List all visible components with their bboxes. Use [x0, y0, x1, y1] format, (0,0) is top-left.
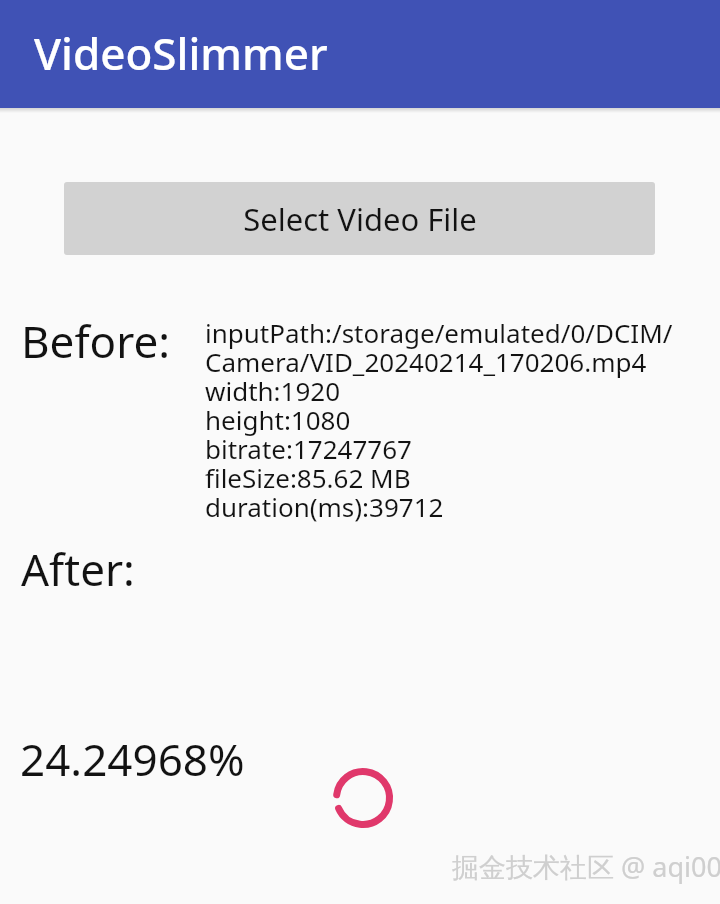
- staticText: VideoSlimmer: [34, 23, 328, 83]
- other: Compressing progress: [333, 768, 393, 828]
- staticText: 24.24968%: [20, 729, 245, 789]
- staticText: After:: [21, 539, 135, 599]
- staticText: Select Video File: [243, 198, 477, 240]
- staticText: Before:: [21, 311, 205, 371]
- staticText: 掘金技术社区 @ aqi00: [452, 848, 720, 885]
- staticText: inputPath:/storage/emulated/0/DCIM/ Came…: [205, 315, 673, 524]
- button[interactable]: Select Video File: [64, 182, 655, 255]
